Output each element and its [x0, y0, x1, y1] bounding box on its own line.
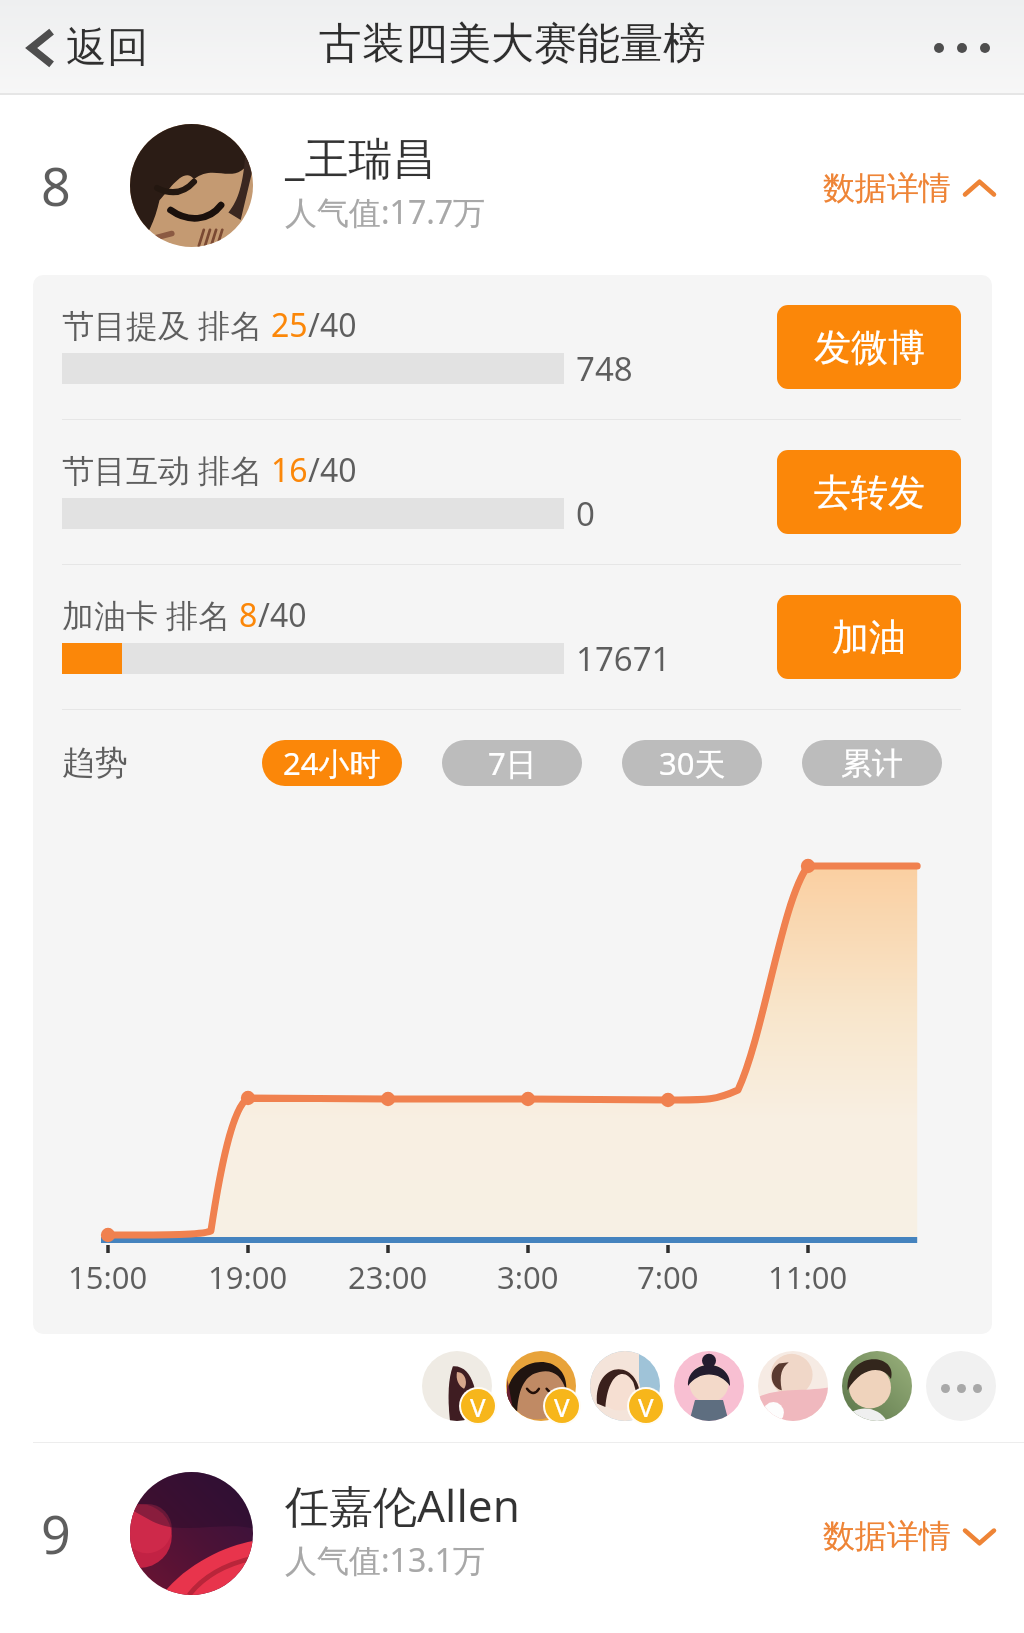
staticText: 7日 [488, 742, 537, 784]
staticText: 25 [271, 303, 308, 347]
staticText: 人气值:13.1万 [285, 1538, 486, 1582]
staticText: 古装四美大赛能量榜 [319, 17, 706, 71]
staticText: _王瑞昌 [285, 127, 437, 187]
button[interactable]: 8 [0, 95, 1024, 275]
button[interactable] [590, 1351, 660, 1421]
staticText: 17671 [576, 636, 671, 681]
staticText: 15:00 [68, 1256, 148, 1298]
button[interactable]: 30天 [622, 740, 762, 786]
staticText: 累计 [841, 744, 903, 783]
staticText: 节目提及 排名 [62, 303, 271, 347]
staticText: 加油卡 排名 [62, 593, 239, 637]
button[interactable]: More options [934, 0, 990, 95]
staticText: 8 [41, 150, 71, 221]
button[interactable]: 发微博 [777, 305, 961, 389]
staticText: 23:00 [348, 1256, 428, 1298]
button[interactable]: 9 [0, 1443, 1024, 1623]
button[interactable]: 累计 [802, 740, 942, 786]
button[interactable]: 数据详情 [823, 1476, 995, 1596]
staticText: 返回 [66, 22, 148, 74]
staticText: 24小时 [283, 742, 381, 784]
staticText: V [554, 1389, 570, 1423]
button[interactable] [758, 1351, 828, 1421]
staticText: 加油 [832, 614, 906, 661]
staticText: 11:00 [768, 1256, 848, 1298]
staticText: 发微博 [814, 324, 925, 371]
button[interactable] [842, 1351, 912, 1421]
staticText: V [638, 1389, 654, 1423]
button[interactable]: 返回 [26, 0, 148, 95]
staticText: 16 [271, 448, 308, 492]
staticText: 节目互动 排名 [62, 448, 271, 492]
button[interactable] [674, 1351, 744, 1421]
button[interactable] [422, 1351, 492, 1421]
staticText: /40 [308, 448, 357, 492]
staticText: /40 [308, 303, 357, 347]
staticText: 748 [576, 346, 633, 391]
staticText: 0 [576, 491, 595, 536]
button[interactable]: More fans [926, 1351, 996, 1421]
staticText: 8 [239, 593, 258, 637]
button[interactable]: 去转发 [777, 450, 961, 534]
staticText: 9 [41, 1498, 71, 1569]
staticText: 19:00 [208, 1256, 288, 1298]
staticText: 趋势 [62, 742, 128, 784]
button[interactable]: 24小时 [262, 740, 402, 786]
button[interactable]: 7日 [442, 740, 582, 786]
button[interactable] [506, 1351, 576, 1421]
staticText: 7:00 [637, 1256, 699, 1298]
staticText: 3:00 [497, 1256, 559, 1298]
staticText: 数据详情 [823, 168, 951, 208]
staticText: 30天 [659, 742, 726, 784]
staticText: 人气值:17.7万 [285, 190, 486, 234]
button[interactable]: 加油 [777, 595, 961, 679]
staticText: 去转发 [814, 469, 925, 516]
staticText: 数据详情 [823, 1516, 951, 1556]
button[interactable]: 数据详情 [823, 128, 995, 248]
staticText: V [470, 1389, 486, 1423]
staticText: /40 [258, 593, 307, 637]
staticText: 任嘉伦Allen [285, 1475, 520, 1535]
